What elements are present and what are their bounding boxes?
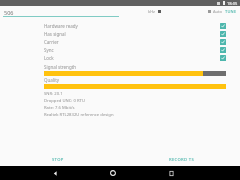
other: Hardware ready checked [220,23,226,29]
staticText: Lock [44,55,220,61]
staticText: Realtek RTL2832U reference design [44,112,114,118]
staticText: SNR: 20.1 [44,91,63,97]
staticText: RECORD TS [169,157,194,163]
staticText: Dropped UNC: 0 RTU [44,98,85,104]
button[interactable]: Carrier [0,38,240,46]
staticText: Auto [213,9,222,14]
button[interactable]: Has signal [0,30,240,38]
staticText: Carrier [44,39,220,45]
button[interactable]: Lock [0,54,240,62]
staticText: Rate: 7.6 Mbit/s [44,105,75,111]
staticText: TUNE [225,9,237,14]
button[interactable]: Back [48,166,62,180]
other: Carrier checked [220,39,226,45]
button[interactable]: Recents [164,166,178,180]
staticText: 506 [4,9,14,16]
staticText: Quality [44,77,60,83]
other: Has signal checked [220,31,226,37]
other: Sync checked [220,47,226,53]
staticText: Sync [44,47,220,53]
staticText: Hardware ready [44,23,220,29]
staticText: 18:05 [227,1,238,6]
button[interactable]: RECORD TS [165,155,198,165]
button[interactable]: TUNE [225,9,237,14]
staticText: STOP [52,157,64,163]
other: Lock checked [220,55,226,61]
staticText: Has signal [44,31,220,37]
staticText: kHz [148,9,155,14]
button[interactable]: Sync [0,46,240,54]
button[interactable]: STOP [48,155,68,165]
button[interactable]: Hardware ready [0,22,240,30]
button[interactable]: Home [106,166,120,180]
staticText: Signal strength [44,64,77,70]
